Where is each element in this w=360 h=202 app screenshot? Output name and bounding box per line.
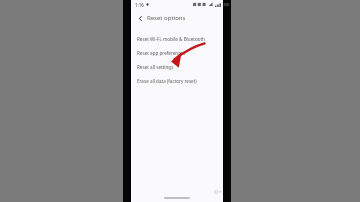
staticText: Reset all settings [137,64,174,70]
staticText: 1:16 [135,2,144,8]
button[interactable]: Reset all settings [131,60,223,74]
staticText: Erase all data (factory reset) [137,78,197,84]
button[interactable]: Reset app preferences [131,46,223,60]
staticText: Reset app preferences [137,50,186,56]
button[interactable]: Erase all data (factory reset) [131,74,223,88]
button[interactable]: Back [135,13,145,23]
staticText: Reset options [147,14,186,22]
staticText: D+ [214,188,222,196]
button[interactable]: Reset Wi-Fi, mobile & Bluetooth [131,32,223,46]
staticText: Reset Wi-Fi, mobile & Bluetooth [137,36,205,42]
